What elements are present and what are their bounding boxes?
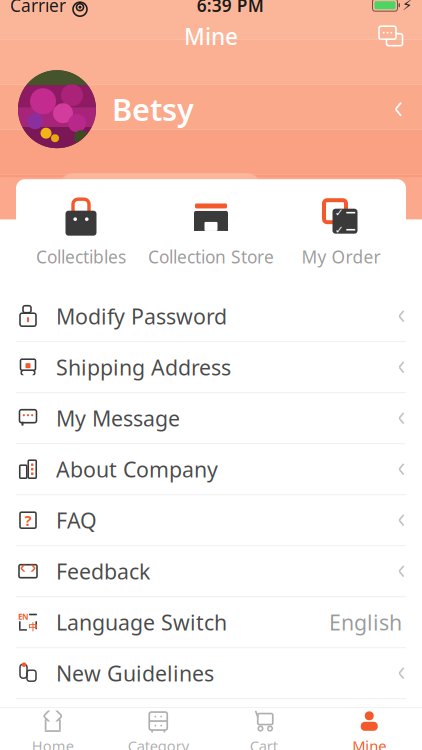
staticText: My Order bbox=[301, 245, 380, 268]
button[interactable]: Collection Store bbox=[146, 180, 276, 286]
staticText: My Message bbox=[56, 404, 180, 432]
button[interactable]: Modify Password bbox=[0, 291, 422, 342]
staticText: Cart bbox=[250, 736, 278, 750]
button[interactable]: Mine bbox=[316, 704, 422, 750]
staticText: Carrier bbox=[10, 0, 66, 17]
button[interactable]: Home bbox=[0, 704, 105, 750]
staticText: ? bbox=[24, 510, 31, 530]
staticText: FAQ bbox=[56, 506, 97, 534]
staticText: ✓ bbox=[335, 207, 344, 219]
staticText: Language Switch bbox=[56, 608, 227, 636]
button[interactable]: ✓ bbox=[276, 180, 406, 286]
button[interactable]: My Message bbox=[0, 393, 422, 444]
staticText: 中 bbox=[28, 621, 37, 633]
button[interactable]: About Company bbox=[0, 444, 422, 495]
button[interactable]: EN bbox=[0, 597, 422, 648]
button[interactable]: Cart bbox=[211, 704, 316, 750]
staticText: ✓ bbox=[335, 224, 344, 236]
button[interactable]: New Guidelines bbox=[0, 648, 422, 699]
button[interactable]: ? bbox=[0, 495, 422, 546]
staticText: Collection Store bbox=[148, 245, 274, 268]
staticText: Shipping Address bbox=[56, 353, 231, 381]
staticText: Category bbox=[128, 736, 189, 750]
staticText: Mine bbox=[352, 736, 386, 750]
staticText: Modify Password bbox=[56, 302, 227, 330]
staticText: Feedback bbox=[56, 557, 150, 585]
staticText: English bbox=[329, 608, 402, 636]
button[interactable]: Shipping Address bbox=[0, 342, 422, 393]
staticText: Home bbox=[32, 736, 74, 750]
staticText: ⚡︎ bbox=[402, 0, 412, 14]
button[interactable]: Feedback bbox=[0, 546, 422, 597]
staticText: New Guidelines bbox=[56, 659, 214, 687]
staticText: 6:39 PM bbox=[197, 0, 264, 17]
button[interactable]: Category bbox=[105, 704, 211, 750]
staticText: Collectibles bbox=[36, 245, 126, 268]
staticText: About Company bbox=[56, 455, 218, 483]
staticText: EN bbox=[18, 611, 29, 622]
button[interactable]: Betsy bbox=[0, 66, 422, 152]
staticText: Betsy bbox=[112, 89, 194, 129]
staticText: Mine bbox=[184, 21, 238, 51]
button[interactable]: Messages bbox=[376, 21, 406, 51]
button[interactable]: Collectibles bbox=[16, 180, 146, 286]
